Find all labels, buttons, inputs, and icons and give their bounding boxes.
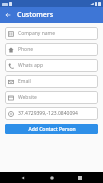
button[interactable]: Home — [47, 173, 57, 183]
staticText: Phone — [18, 46, 34, 53]
staticText: Company name — [18, 30, 56, 37]
staticText: Website — [18, 94, 37, 101]
button[interactable]: Recent apps — [75, 173, 85, 183]
staticText: Whats app — [18, 62, 44, 69]
button[interactable]: Phone — [5, 43, 98, 56]
staticText: Customers — [17, 10, 54, 20]
button[interactable]: Company name — [5, 27, 98, 40]
button[interactable]: Back — [18, 173, 28, 183]
button[interactable]: Back — [3, 10, 13, 20]
staticText: Add Contact Person — [28, 126, 76, 133]
button[interactable]: Website — [5, 91, 98, 104]
button[interactable]: Email — [5, 75, 98, 88]
staticText: 37.4729399,-123.0840094 — [18, 110, 78, 117]
button[interactable]: Whats app — [5, 59, 98, 72]
staticText: Email — [18, 78, 31, 85]
button[interactable]: 37.4729399,-123.0840094 — [5, 107, 98, 120]
button[interactable]: Add Contact Person — [5, 124, 98, 134]
